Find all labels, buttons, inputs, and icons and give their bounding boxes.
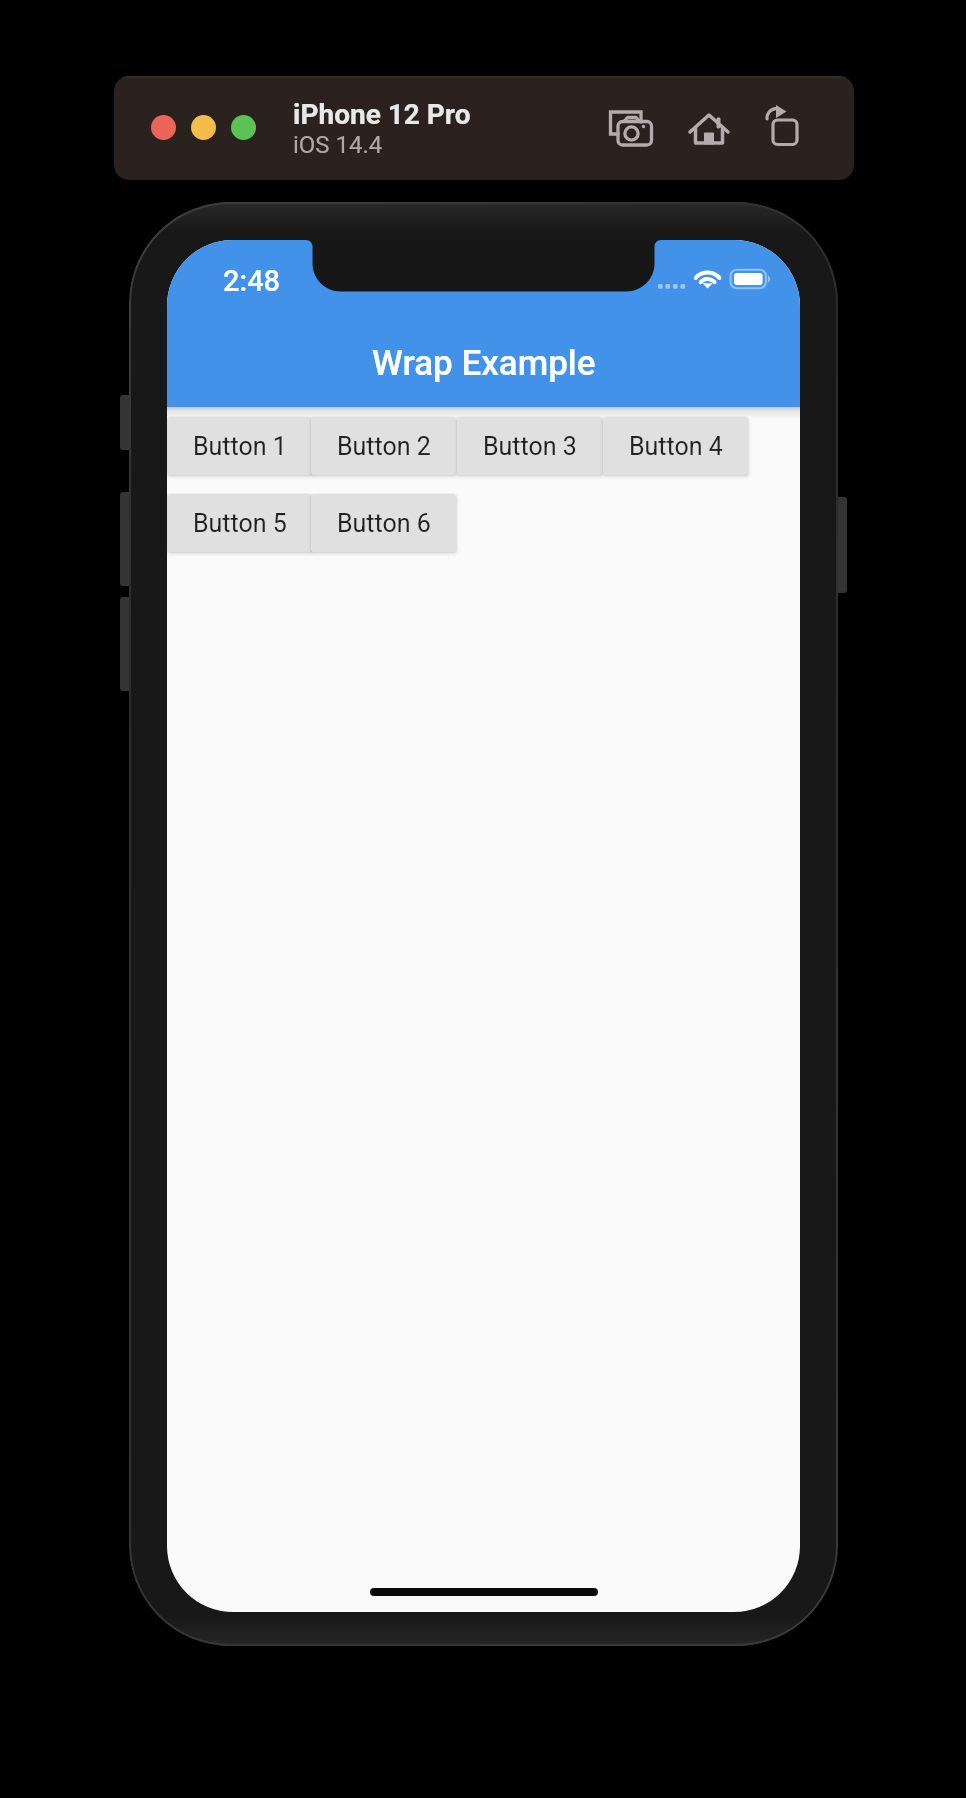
button[interactable]: Button 2 bbox=[311, 417, 456, 475]
staticText: 2:48 bbox=[223, 264, 281, 298]
staticText: Button 6 bbox=[337, 509, 431, 538]
staticText: Button 2 bbox=[337, 432, 431, 461]
staticText: Wrap Example bbox=[372, 343, 596, 384]
button[interactable]: Screenshot bbox=[600, 98, 660, 158]
staticText: Button 1 bbox=[193, 432, 287, 461]
button[interactable]: Close bbox=[151, 115, 176, 140]
staticText: Button 5 bbox=[193, 509, 287, 538]
button[interactable]: Home bbox=[679, 98, 739, 158]
button[interactable]: Rotate bbox=[752, 98, 812, 158]
staticText: iOS 14.4 bbox=[293, 131, 383, 159]
button[interactable]: Button 1 bbox=[167, 417, 312, 475]
staticText: Button 3 bbox=[483, 432, 577, 461]
button[interactable]: Minimize bbox=[191, 115, 216, 140]
button[interactable]: Button 3 bbox=[457, 417, 602, 475]
button[interactable]: Button 4 bbox=[603, 417, 748, 475]
button[interactable]: Button 5 bbox=[167, 494, 312, 552]
button[interactable]: Zoom bbox=[231, 115, 256, 140]
staticText: Button 4 bbox=[629, 432, 723, 461]
button[interactable]: Button 6 bbox=[311, 494, 456, 552]
staticText: iPhone 12 Pro bbox=[293, 98, 471, 131]
